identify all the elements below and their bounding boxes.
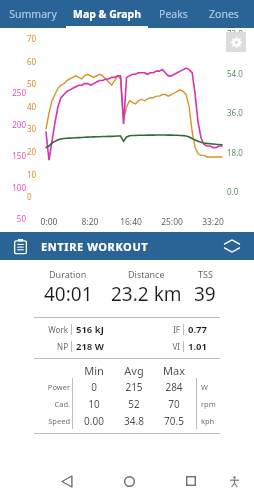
staticText: 20 <box>27 146 43 157</box>
staticText: Work <box>40 324 68 335</box>
staticText: Max <box>154 363 194 378</box>
staticText: 0.77 <box>188 323 214 336</box>
staticText: 100 <box>2 182 26 193</box>
staticText: IF <box>173 324 180 335</box>
staticText: Power <box>36 382 70 392</box>
staticText: 70 <box>27 33 43 44</box>
staticText: VI <box>172 341 180 352</box>
staticText: 0.0 <box>227 186 249 197</box>
button[interactable]: Back <box>50 464 84 498</box>
button[interactable]: Map & Graph <box>66 0 148 28</box>
staticText: 0 <box>27 191 43 202</box>
staticText: Avg <box>114 363 154 378</box>
staticText: 150 <box>2 150 26 161</box>
staticText: Duration <box>49 268 87 280</box>
staticText: 25:00 <box>155 216 189 228</box>
staticText: 8:20 <box>73 216 107 228</box>
staticText: 0 <box>74 380 114 394</box>
staticText: kph <box>201 416 215 426</box>
button[interactable]: Recent apps <box>174 464 208 498</box>
staticText: Peaks <box>159 7 188 21</box>
staticText: 72.0 <box>227 28 249 39</box>
button[interactable]: Graph settings <box>226 32 246 52</box>
staticText: 33:20 <box>196 216 230 228</box>
button[interactable]: Duration <box>29 268 107 307</box>
button[interactable]: ENTIRE WORKOUT <box>0 232 254 260</box>
staticText: Min <box>74 363 114 378</box>
staticText: 39 <box>194 281 216 307</box>
staticText: 0.00 <box>74 414 114 428</box>
staticText: NP <box>40 341 68 352</box>
staticText: 54.0 <box>227 68 249 79</box>
button[interactable]: Accessibility <box>220 467 248 495</box>
staticText: Speed <box>36 416 70 426</box>
staticText: Zones <box>209 7 239 21</box>
staticText: 200 <box>2 119 26 130</box>
button[interactable]: Home <box>112 464 146 498</box>
staticText: 250 <box>2 87 26 98</box>
staticText: Summary <box>9 7 57 21</box>
staticText: ENTIRE WORKOUT <box>41 239 149 254</box>
button[interactable]: Peaks <box>148 0 198 28</box>
staticText: 40:01 <box>44 281 93 307</box>
button[interactable]: TSS <box>185 268 225 307</box>
staticText: 52 <box>114 397 154 411</box>
staticText: 18.0 <box>227 147 249 158</box>
staticText: W <box>201 382 208 392</box>
staticText: 215 <box>114 380 154 394</box>
staticText: 218 W <box>76 340 104 353</box>
staticText: 10 <box>74 397 114 411</box>
staticText: 1.01 <box>188 340 214 353</box>
staticText: 10 <box>27 169 43 180</box>
button[interactable]: Collapse or expand section <box>218 232 246 260</box>
staticText: 70.5 <box>154 414 194 428</box>
staticText: TSS <box>198 268 213 280</box>
staticText: 60 <box>27 56 43 67</box>
staticText: Cad. <box>36 399 70 409</box>
staticText: 0:00 <box>32 216 66 228</box>
staticText: 516 kJ <box>76 323 104 336</box>
button[interactable]: Zones <box>198 0 250 28</box>
staticText: Map & Graph <box>73 7 141 21</box>
staticText: rpm <box>201 399 216 409</box>
staticText: 34.8 <box>114 414 154 428</box>
staticText: 50 <box>27 78 43 89</box>
staticText: 284 <box>154 380 194 394</box>
staticText: 16:40 <box>114 216 148 228</box>
staticText: 36.0 <box>227 107 249 118</box>
staticText: 30 <box>27 123 43 134</box>
button[interactable]: Distance <box>107 268 185 307</box>
staticText: 23.2 km <box>111 281 182 307</box>
staticText: Distance <box>128 268 165 280</box>
staticText: 70 <box>154 397 194 411</box>
staticText: 0 <box>2 245 26 256</box>
button[interactable]: Summary <box>0 0 66 28</box>
staticText: 50 <box>2 213 26 224</box>
staticText: 40 <box>27 101 43 112</box>
